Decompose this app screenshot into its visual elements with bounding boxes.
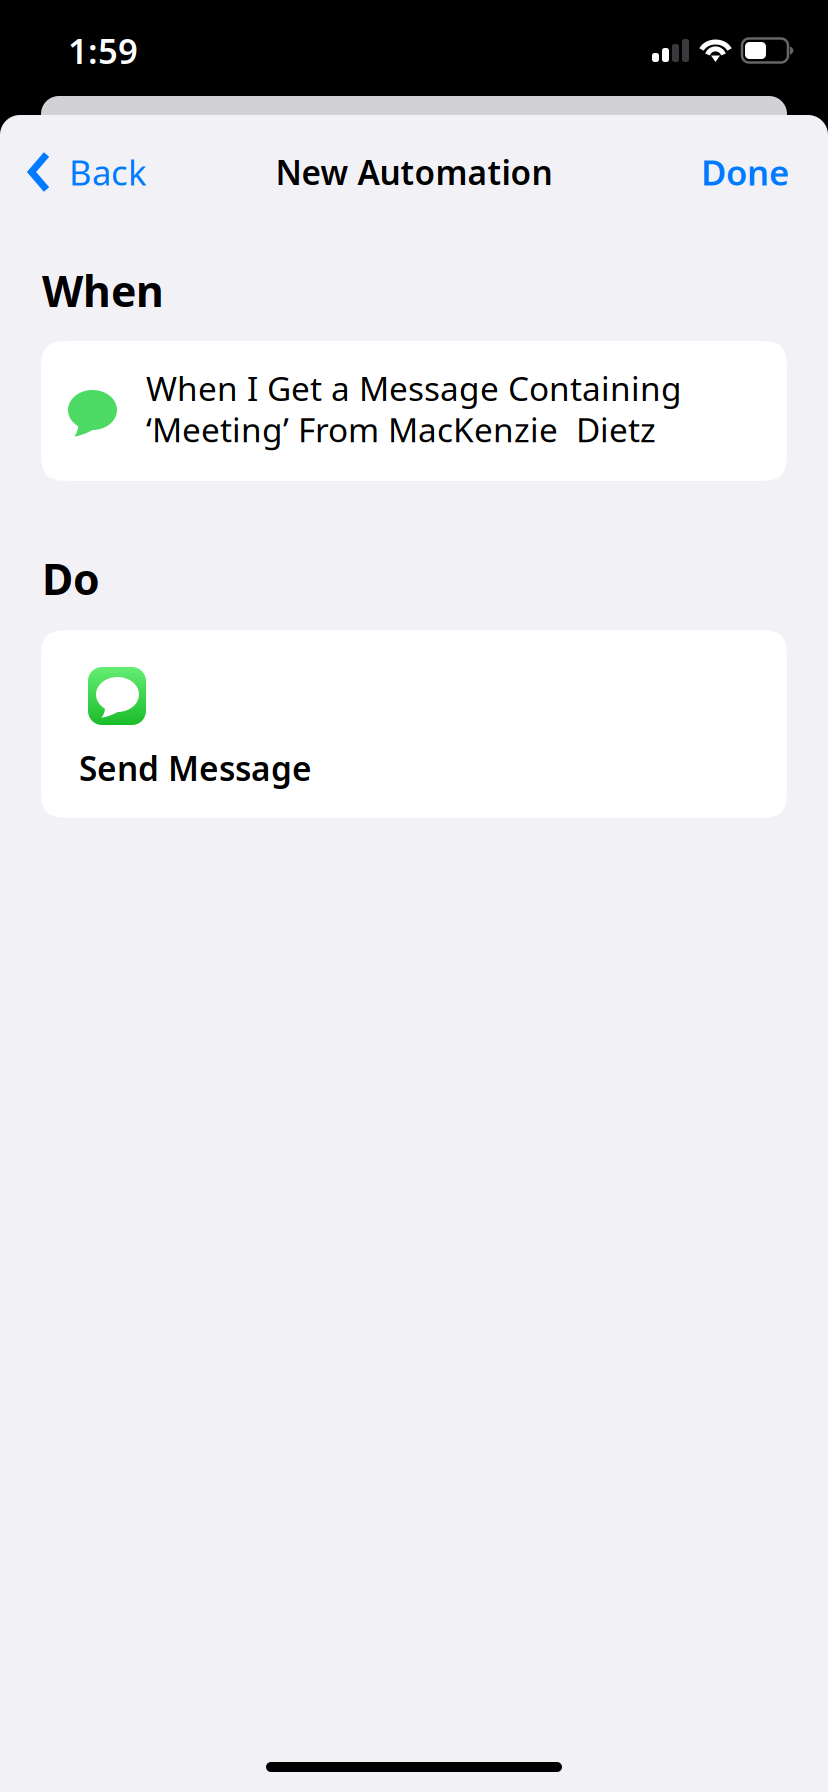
button[interactable]: When I Get a Message Containing xyxy=(0,341,828,481)
staticText: Send Message xyxy=(79,746,312,790)
staticText: Back xyxy=(69,149,147,195)
button[interactable]: Back xyxy=(0,115,163,229)
button[interactable]: Done xyxy=(685,115,828,229)
staticText: Do xyxy=(42,550,100,607)
staticText: ‘Meeting’ From MacKenzie Dietz xyxy=(146,407,656,452)
staticText: When xyxy=(42,262,164,319)
staticText: When I Get a Message Containing xyxy=(146,366,682,410)
button[interactable]: Send Message xyxy=(0,630,828,818)
staticText: New Automation xyxy=(275,150,552,194)
staticText: 1:59 xyxy=(68,27,138,73)
staticText: Done xyxy=(701,149,789,195)
